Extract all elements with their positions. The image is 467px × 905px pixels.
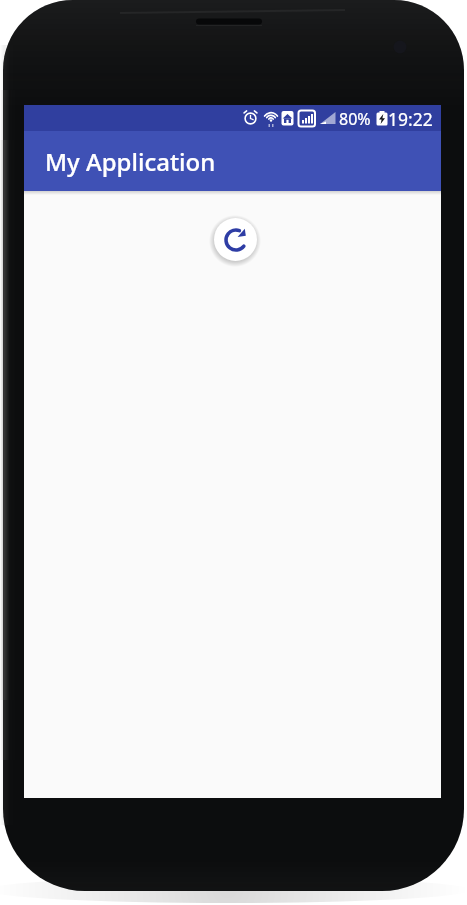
staticText: 80% [339,108,371,130]
staticText: 19:22 [388,107,433,131]
staticText: My Application [45,145,216,178]
button[interactable] [214,218,257,261]
